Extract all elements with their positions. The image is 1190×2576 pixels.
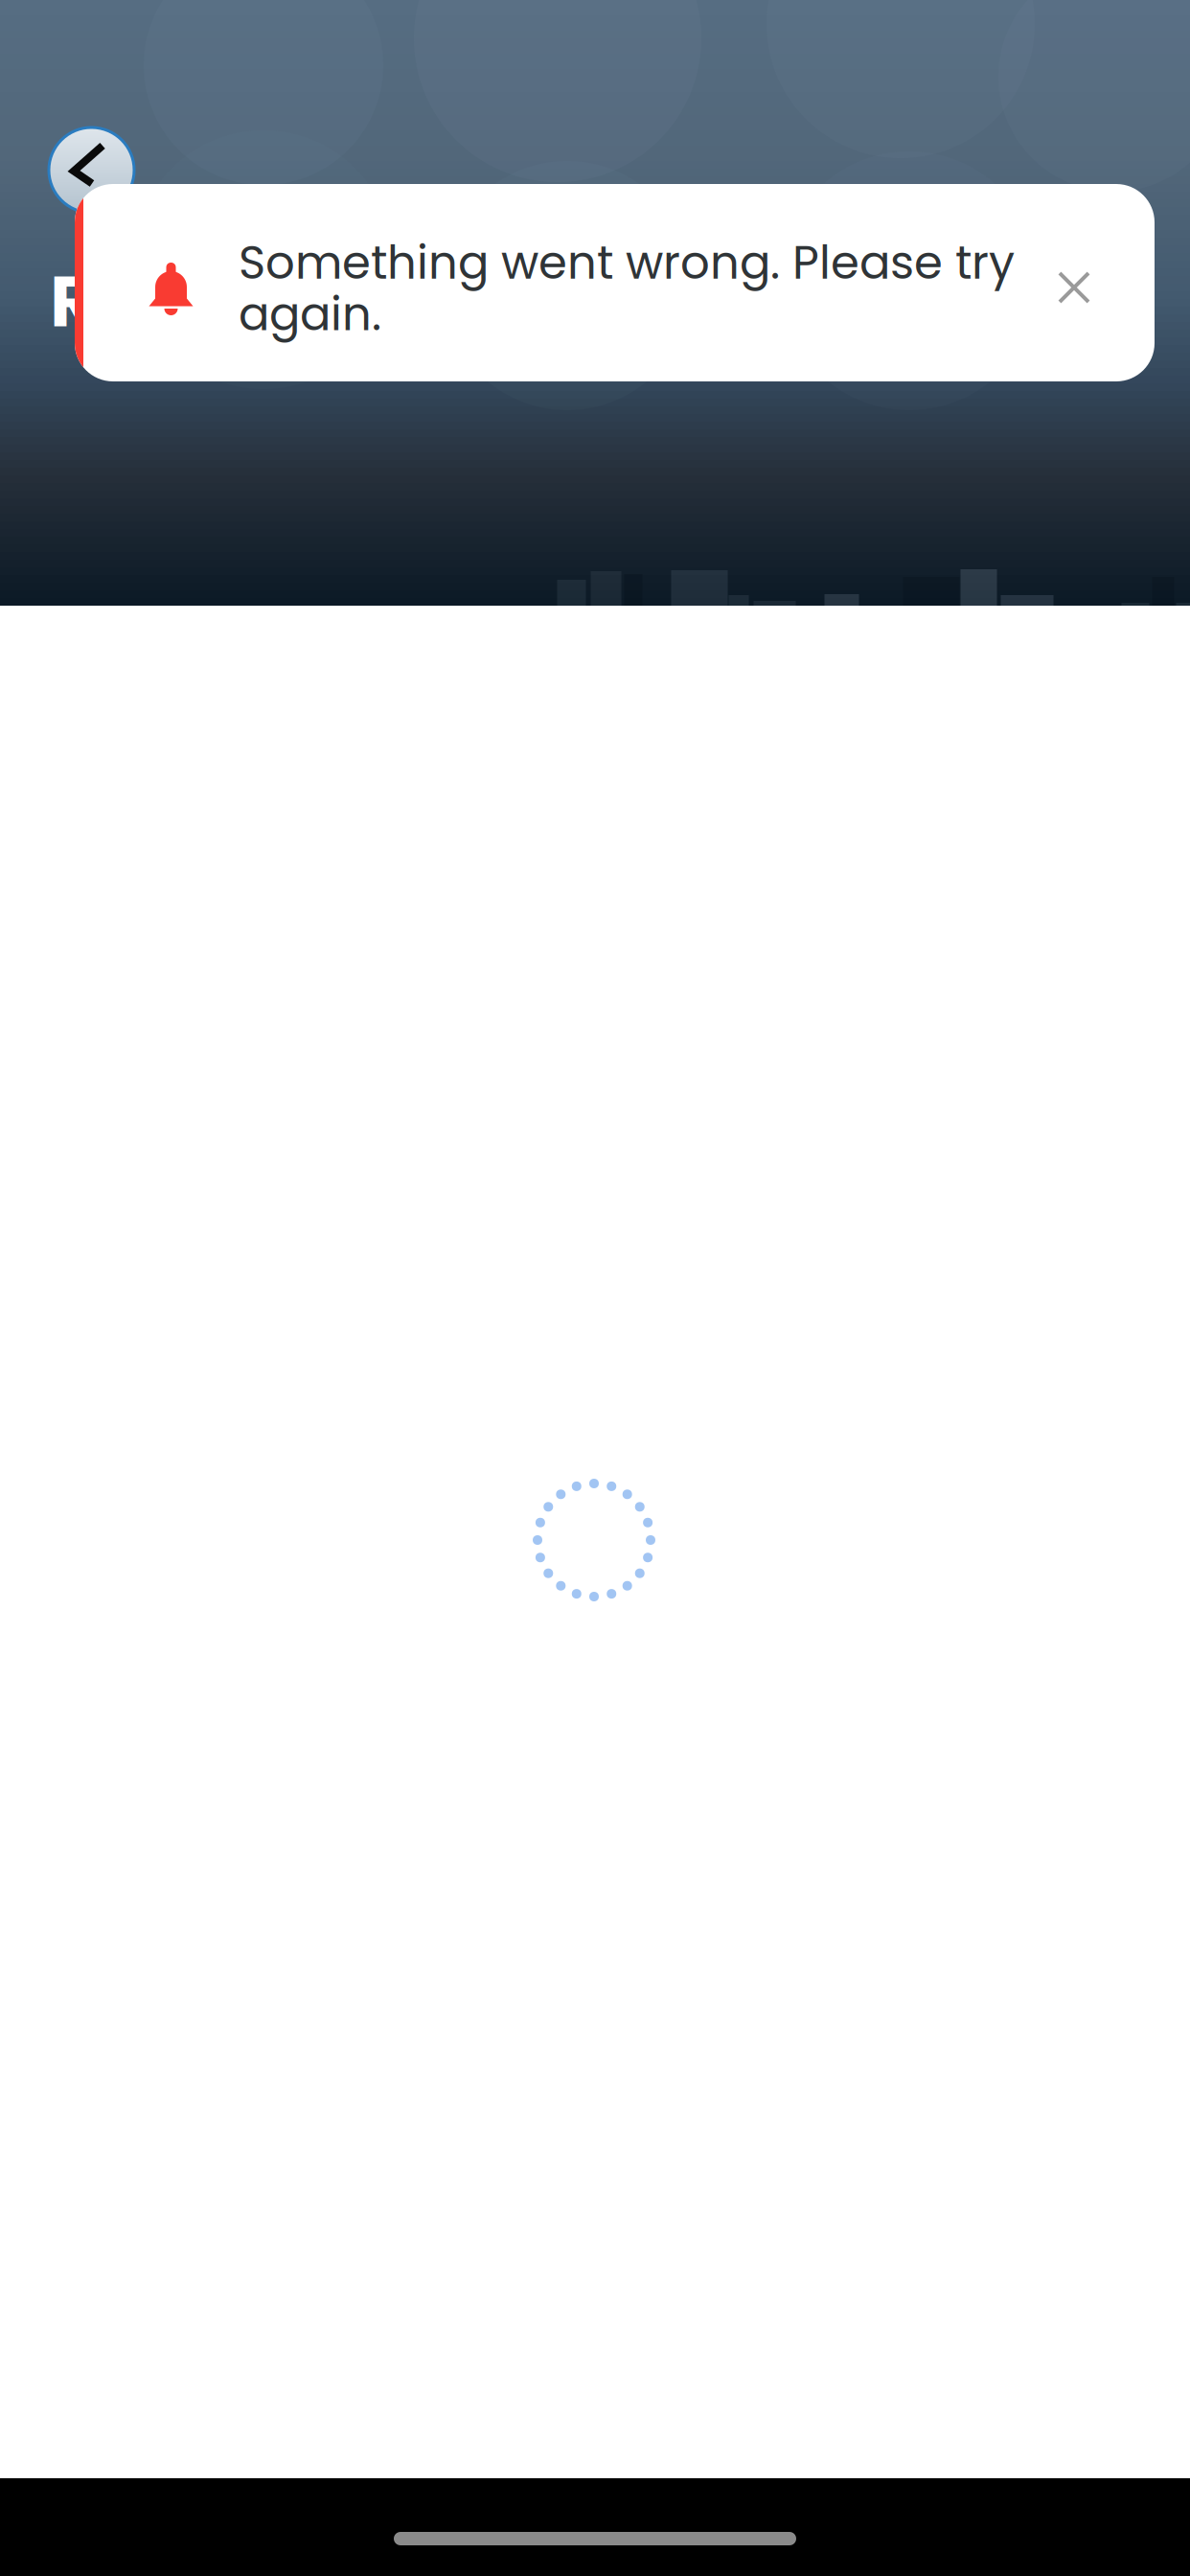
staticText: Rewards [50,251,372,351]
staticText: Something went wrong. Please try again. [239,237,1015,340]
button[interactable]: Back [49,127,134,213]
button[interactable]: Dismiss [1031,244,1117,331]
